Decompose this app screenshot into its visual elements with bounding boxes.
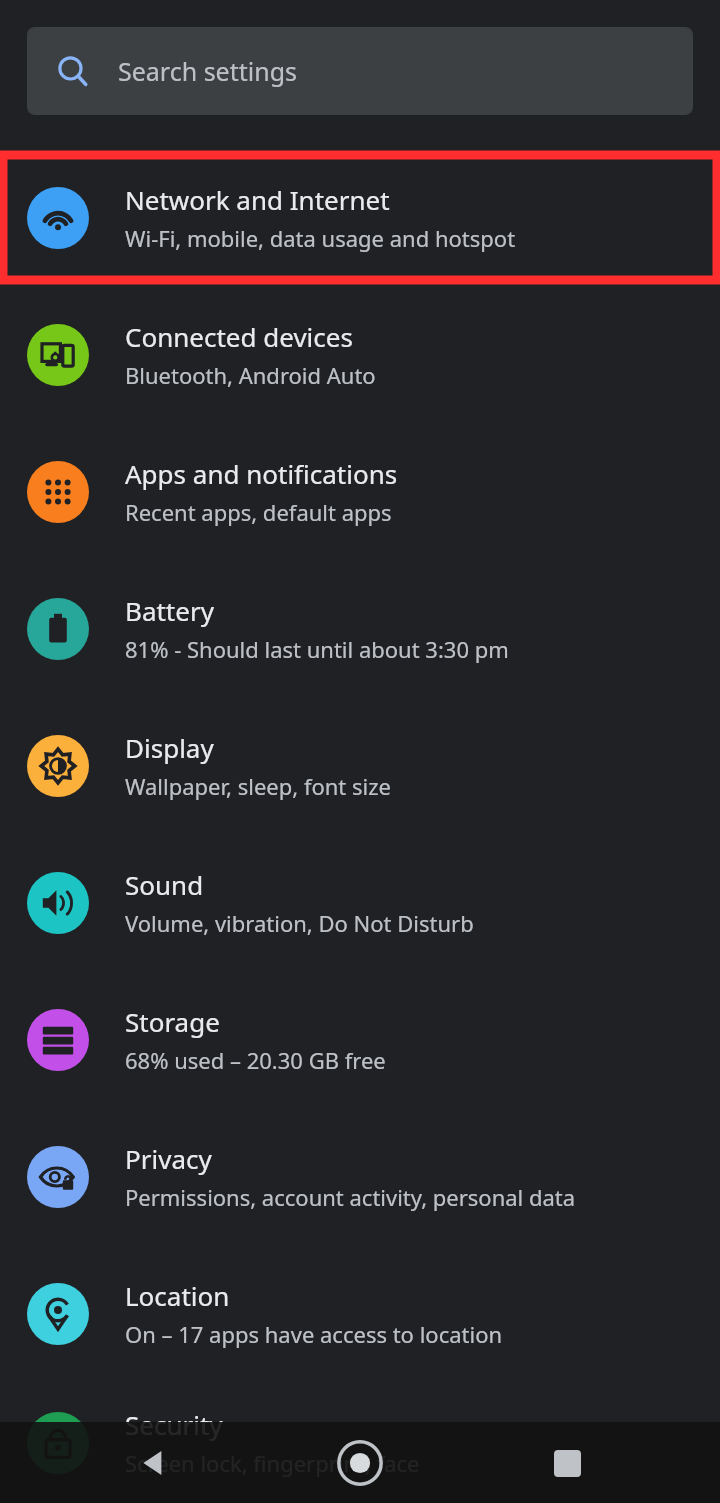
button[interactable]: Battery (0, 560, 720, 697)
button[interactable]: Apps and notifications (0, 423, 720, 560)
staticText: Volume, vibration, Do Not Disturb (125, 908, 474, 938)
staticText: Apps and notifications (125, 456, 398, 491)
button[interactable]: Home (328, 1431, 392, 1495)
button[interactable]: Sound (0, 834, 720, 971)
button[interactable]: Location (0, 1245, 720, 1382)
button[interactable]: Connected devices (0, 286, 720, 423)
button[interactable]: Security (0, 1382, 720, 1503)
staticText: Storage (125, 1004, 220, 1039)
staticText: Battery (125, 593, 214, 628)
staticText: Bluetooth, Android Auto (125, 360, 376, 390)
button[interactable]: Back (125, 1435, 181, 1491)
staticText: Privacy (125, 1141, 212, 1176)
staticText: Recent apps, default apps (125, 497, 392, 527)
button[interactable]: Display (0, 697, 720, 834)
staticText: Search settings (118, 54, 298, 88)
button[interactable]: Network and Internet (0, 149, 720, 286)
staticText: Security (125, 1407, 223, 1442)
staticText: Sound (125, 867, 204, 902)
staticText: Wi-Fi, mobile, data usage and hotspot (125, 223, 516, 253)
button[interactable]: Recent apps (539, 1435, 595, 1491)
staticText: Network and Internet (125, 182, 390, 217)
button[interactable]: Search settings (27, 27, 693, 115)
staticText: 81% - Should last until about 3:30 pm (125, 634, 509, 664)
staticText: Connected devices (125, 319, 353, 354)
staticText: Screen lock, fingerprint, face (125, 1448, 420, 1478)
button[interactable]: Storage (0, 971, 720, 1108)
staticText: Permissions, account activity, personal … (125, 1182, 576, 1212)
staticText: On – 17 apps have access to location (125, 1319, 503, 1349)
button[interactable]: Privacy (0, 1108, 720, 1245)
staticText: 68% used – 20.30 GB free (125, 1045, 386, 1075)
staticText: Display (125, 730, 214, 765)
staticText: Location (125, 1278, 230, 1313)
staticText: Wallpaper, sleep, font size (125, 771, 391, 801)
